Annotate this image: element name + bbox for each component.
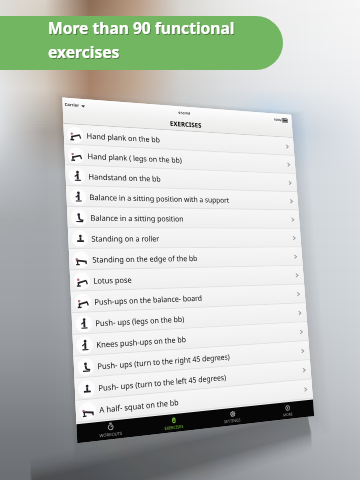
button[interactable]: Hand plank on the bb: [63, 124, 294, 156]
staticText: Hand plank ( legs on the bb): [87, 151, 182, 165]
button[interactable]: WORKOUTS: [76, 417, 143, 443]
staticText: Standing on the edge of the bb: [92, 253, 198, 265]
staticText: More than 90 functional: [49, 18, 236, 39]
button[interactable]: Lotus pose: [70, 266, 304, 292]
button[interactable]: Balance in a sitting position with a sup…: [66, 186, 298, 210]
staticText: A half- squat on the bb: [99, 397, 179, 415]
staticText: 9:53 PM: [178, 110, 190, 116]
button[interactable]: MORE: [260, 399, 314, 422]
button[interactable]: EXERCISES: [142, 411, 204, 436]
staticText: WORKOUTS: [99, 430, 123, 438]
button[interactable]: Standing on the edge of the bb: [69, 247, 303, 270]
staticText: Handstand on the bb: [88, 171, 161, 184]
staticText: exercises: [48, 41, 120, 62]
staticText: Push-ups on the balance- board: [94, 293, 203, 307]
staticText: MORE: [283, 411, 293, 417]
button[interactable]: Push- ups (legs on the bb): [72, 303, 307, 335]
button[interactable]: Knees push-ups on the bb: [73, 322, 308, 357]
staticText: Lotus pose: [93, 274, 132, 286]
staticText: Push- ups (turn to the left 45 degrees): [98, 372, 227, 393]
button[interactable]: A half- squat on the bb: [75, 379, 313, 423]
staticText: 100%: [274, 117, 281, 122]
staticText: Push- ups (legs on the bb): [95, 314, 184, 328]
staticText: Push- ups (turn to the right 45 degrees): [97, 351, 230, 372]
button[interactable]: Push-ups on the balance- board: [71, 284, 305, 313]
button[interactable]: Standing on a roller: [68, 228, 301, 249]
staticText: More than 90 functional: [48, 17, 235, 38]
button[interactable]: Push- ups (turn to the right 45 degrees): [73, 341, 310, 379]
button[interactable]: SETTINGS: [203, 405, 261, 429]
button[interactable]: Hand plank ( legs on the bb): [64, 145, 296, 174]
button[interactable]: Balance in a sitting position: [67, 207, 300, 229]
button[interactable]: Push- ups (turn to the left 45 degrees): [74, 360, 311, 401]
staticText: Standing on a roller: [91, 233, 160, 244]
staticText: Hand plank on the bb: [86, 130, 161, 144]
staticText: exercises: [49, 42, 121, 63]
staticText: Carrier: [65, 102, 79, 108]
staticText: Balance in a sitting position: [90, 212, 184, 223]
button[interactable]: Handstand on the bb: [65, 165, 297, 192]
staticText: EXERCISES: [164, 424, 184, 431]
staticText: Knees push-ups on the bb: [96, 334, 187, 350]
staticText: EXERCISES: [170, 119, 202, 130]
staticText: Balance in a sitting position with a sup…: [89, 192, 230, 205]
staticText: SETTINGS: [224, 417, 241, 424]
